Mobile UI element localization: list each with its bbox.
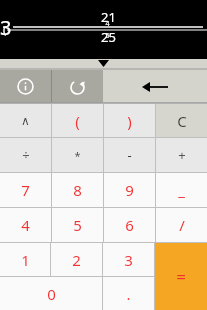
staticText: C bbox=[177, 111, 187, 131]
staticText: + bbox=[178, 146, 186, 164]
button[interactable]: 1 bbox=[0, 243, 50, 276]
staticText: 21 bbox=[101, 8, 116, 26]
button[interactable]: _ bbox=[156, 173, 207, 207]
staticText: 7 bbox=[21, 180, 30, 200]
staticText: 5 bbox=[73, 215, 82, 235]
staticText: 6 bbox=[125, 215, 134, 235]
button[interactable]: 6 bbox=[104, 208, 155, 242]
staticText: ) bbox=[127, 111, 132, 131]
staticText: 4 bbox=[105, 19, 110, 29]
staticText: ∧ bbox=[21, 114, 30, 128]
button[interactable]: = bbox=[155, 243, 207, 310]
staticText: ( bbox=[3, 22, 7, 37]
staticText: 5 bbox=[105, 31, 110, 41]
button[interactable]: 4 bbox=[0, 208, 51, 242]
staticText: 3 bbox=[0, 14, 12, 41]
staticText: 1 bbox=[21, 250, 30, 270]
staticText: 3 bbox=[124, 250, 133, 270]
button[interactable]: 2 bbox=[51, 243, 102, 276]
button[interactable]: C bbox=[156, 104, 207, 137]
button[interactable]: 3 bbox=[103, 243, 154, 276]
staticText: 0 bbox=[47, 284, 56, 304]
staticText: . bbox=[126, 284, 131, 304]
staticText: * bbox=[74, 148, 81, 163]
staticText: 4 bbox=[21, 215, 30, 235]
staticText: 2 bbox=[72, 250, 81, 270]
button[interactable]: 5 bbox=[52, 208, 103, 242]
staticText: = bbox=[176, 265, 186, 288]
staticText: ÷ bbox=[22, 146, 30, 164]
button[interactable]: 7 bbox=[0, 173, 51, 207]
staticText: / bbox=[179, 215, 185, 235]
button[interactable]: ∧ bbox=[0, 104, 51, 137]
staticText: 8 bbox=[73, 180, 82, 200]
button[interactable]: ÷ bbox=[0, 138, 51, 172]
staticText: 9 bbox=[125, 180, 134, 200]
button[interactable]: - bbox=[104, 138, 155, 172]
button[interactable]: 0 bbox=[0, 277, 102, 310]
button[interactable]: Info bbox=[0, 70, 51, 103]
button[interactable]: Reset bbox=[52, 70, 103, 103]
button[interactable]: / bbox=[156, 208, 207, 242]
button[interactable]: 9 bbox=[104, 173, 155, 207]
button[interactable]: * bbox=[52, 138, 103, 172]
button[interactable]: . bbox=[103, 277, 154, 310]
button[interactable]: ( bbox=[52, 104, 103, 137]
button[interactable]: ) bbox=[104, 104, 155, 137]
staticText: _ bbox=[178, 180, 185, 200]
staticText: - bbox=[127, 146, 132, 164]
staticText: 25 bbox=[101, 28, 116, 46]
staticText: ( bbox=[75, 111, 80, 131]
button[interactable]: + bbox=[156, 138, 207, 172]
button[interactable]: 8 bbox=[52, 173, 103, 207]
button[interactable]: Backspace bbox=[103, 70, 207, 103]
